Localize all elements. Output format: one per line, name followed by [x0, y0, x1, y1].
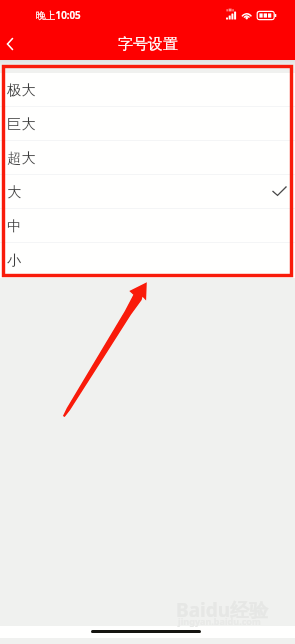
- button[interactable]: 中: [0, 209, 295, 243]
- button[interactable]: 超大: [0, 141, 295, 175]
- staticText: Baidu经验: [176, 597, 269, 623]
- button[interactable]: 小: [0, 243, 295, 277]
- staticText: 小: [7, 251, 22, 269]
- button[interactable]: 极大: [0, 73, 295, 107]
- staticText: 字号设置: [118, 35, 178, 54]
- staticText: 晚上10:05: [36, 9, 81, 22]
- staticText: 巨大: [7, 115, 36, 133]
- staticText: 超大: [7, 149, 36, 167]
- staticText: 大: [7, 183, 22, 201]
- button[interactable]: 大: [0, 175, 295, 209]
- button[interactable]: 巨大: [0, 107, 295, 141]
- staticText: 极大: [7, 81, 36, 99]
- staticText: 中: [7, 217, 22, 235]
- staticText: jingyan.baidu.com: [178, 615, 261, 627]
- button[interactable]: Back: [0, 29, 25, 59]
